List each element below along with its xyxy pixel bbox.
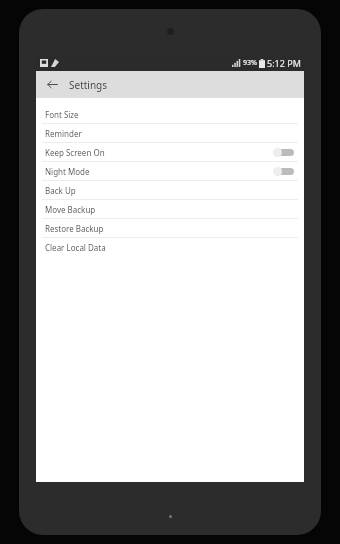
staticText: 93% xyxy=(243,58,257,68)
staticText: 5:12 PM xyxy=(267,57,301,69)
button[interactable]: Keep Screen On xyxy=(36,143,304,161)
staticText: Reminder xyxy=(45,128,294,139)
button[interactable]: Clear Local Data xyxy=(36,238,304,256)
button[interactable]: Font Size xyxy=(36,105,304,123)
staticText: Back Up xyxy=(45,185,294,196)
staticText: Night Mode xyxy=(45,166,273,177)
staticText: Font Size xyxy=(45,109,294,120)
button[interactable]: Reminder xyxy=(36,124,304,142)
staticText: Move Backup xyxy=(45,204,294,215)
staticText: Settings xyxy=(69,78,108,92)
staticText: Restore Backup xyxy=(45,223,294,234)
button[interactable]: Move Backup xyxy=(36,200,304,218)
button[interactable]: Restore Backup xyxy=(36,219,304,237)
button[interactable]: Back xyxy=(36,71,69,98)
button[interactable]: Back Up xyxy=(36,181,304,199)
staticText: Keep Screen On xyxy=(45,147,273,158)
button[interactable]: Night Mode xyxy=(36,162,304,180)
button[interactable]: Keep Screen On toggle xyxy=(273,145,294,159)
button[interactable]: Night Mode toggle xyxy=(273,164,294,178)
staticText: Clear Local Data xyxy=(45,242,294,253)
